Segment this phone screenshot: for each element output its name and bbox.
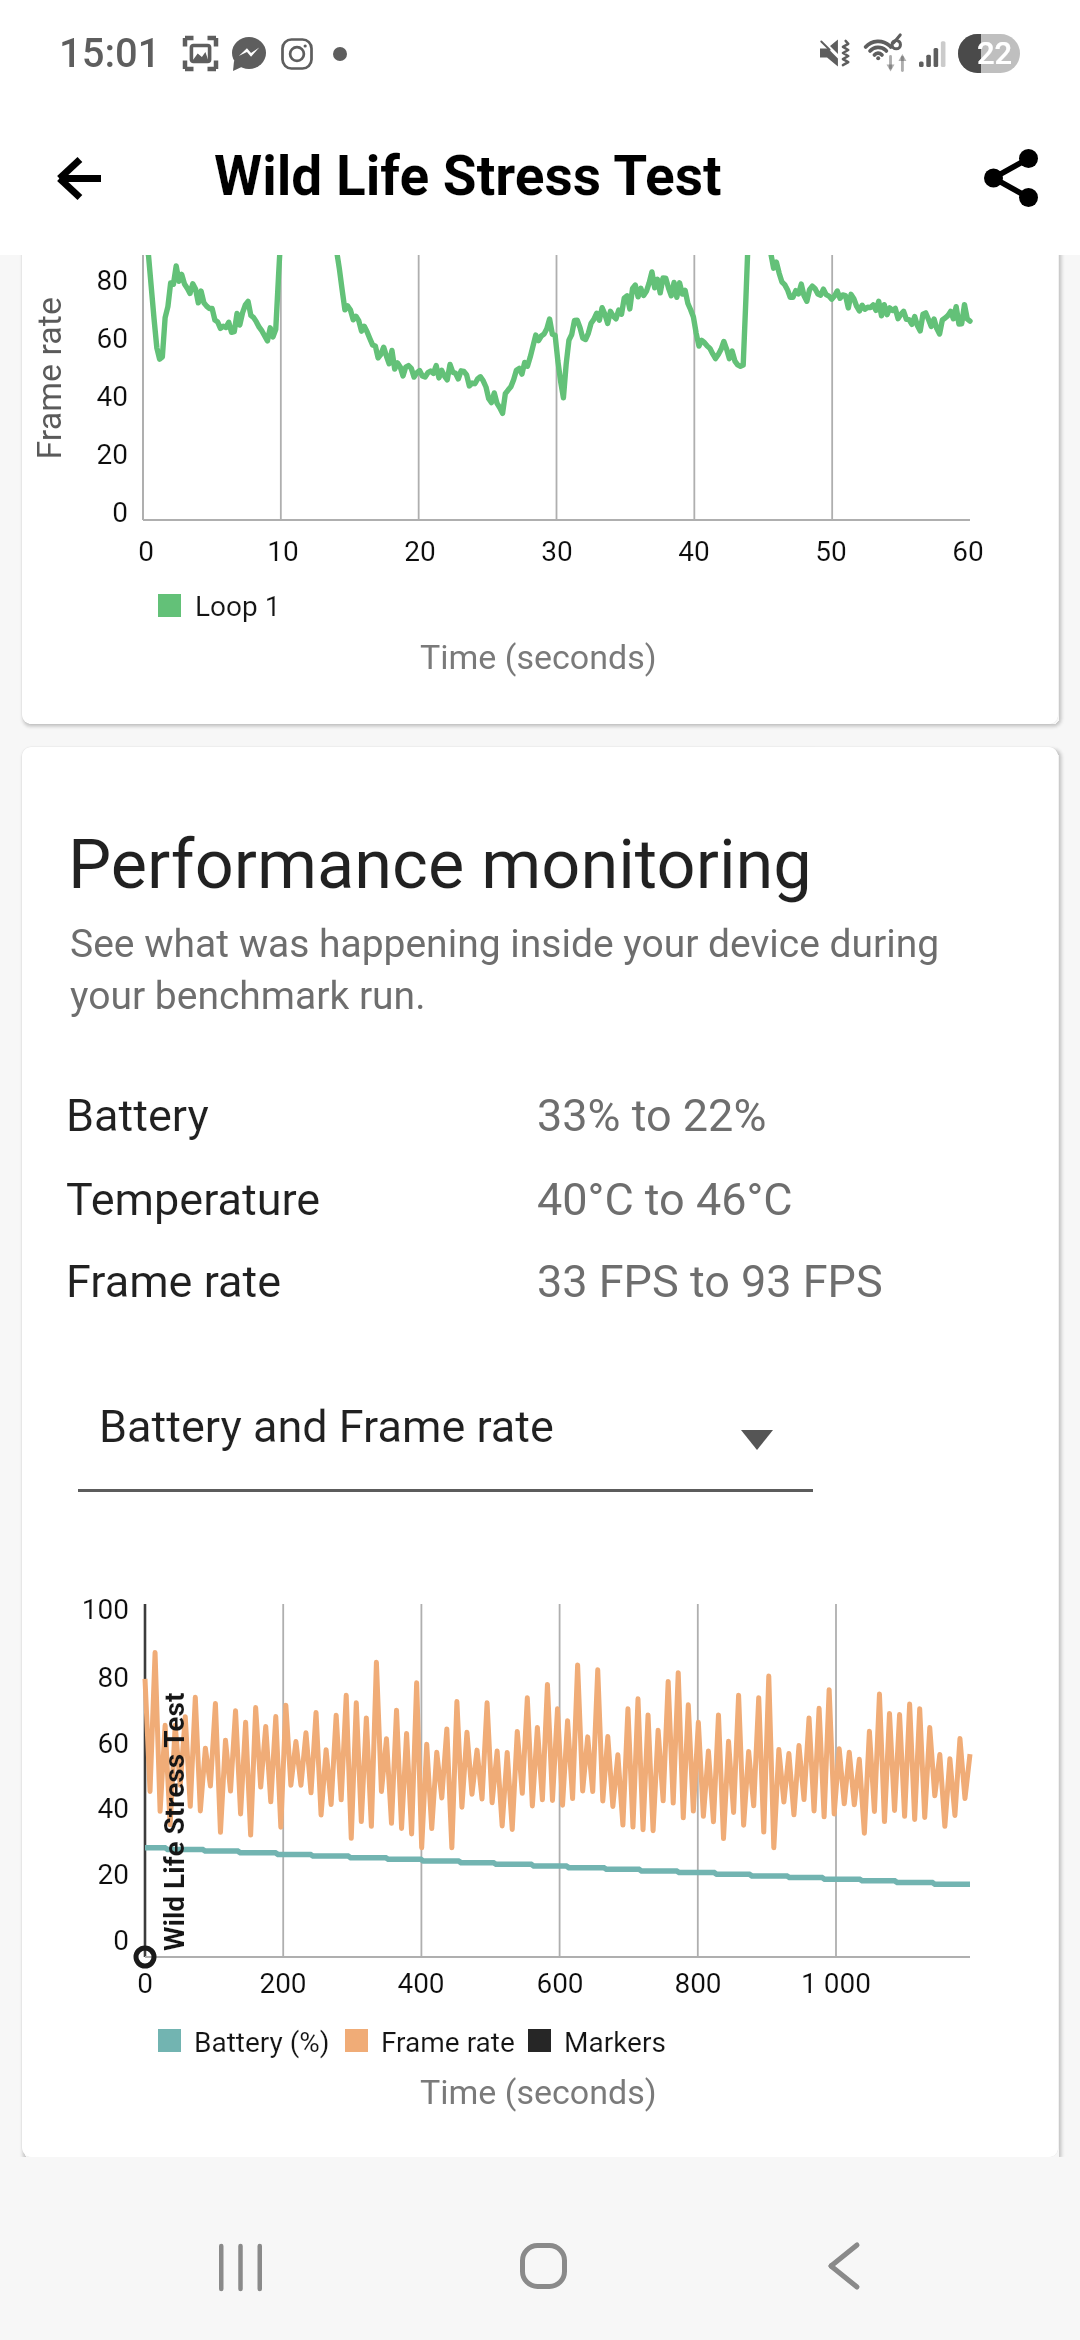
staticText: 40 [22, 380, 128, 413]
staticText: Loop 1 [195, 590, 281, 623]
staticText: 15:01 [59, 30, 161, 77]
staticText: 0 [22, 535, 296, 568]
staticText: 80 [22, 264, 128, 297]
staticText: 40 [544, 535, 844, 568]
button[interactable]: Home [478, 2201, 608, 2331]
staticText: 40 [22, 1792, 129, 1825]
staticText: 800 [548, 1967, 848, 2000]
staticText: Wild Life Stress Test [158, 1692, 191, 1951]
staticText: 20 [22, 438, 128, 471]
staticText: Frame rate [381, 2026, 515, 2059]
staticText: Battery [66, 1089, 209, 1142]
staticText: Time (seconds) [420, 2072, 657, 2112]
staticText: Battery and Frame rate [99, 1400, 554, 1453]
staticText: Frame rate [66, 1255, 282, 1308]
staticText: Performance monitoring [68, 824, 812, 904]
staticText: 60 [22, 322, 128, 355]
button[interactable]: Battery and Frame rate [78, 1390, 813, 1495]
staticText: 80 [22, 1661, 129, 1694]
staticText: 400 [271, 1967, 571, 2000]
staticText: 40°C to 46°C [537, 1173, 793, 1226]
staticText: 60 [818, 535, 1058, 568]
staticText: 20 [22, 1858, 129, 1891]
staticText: See what was happening inside your devic… [70, 921, 940, 1019]
staticText: 20 [270, 535, 570, 568]
staticText: 100 [22, 1593, 129, 1626]
button[interactable]: Temperature [22, 1159, 1058, 1241]
staticText: 0 [22, 1924, 129, 1957]
staticText: Temperature [66, 1173, 321, 1226]
staticText: 10 [133, 535, 433, 568]
staticText: 50 [681, 535, 981, 568]
button[interactable]: Frame rate [22, 1241, 1058, 1323]
staticText: 0 [22, 496, 128, 529]
button[interactable]: Back [779, 2201, 909, 2331]
staticText: 22 [977, 35, 1013, 71]
button[interactable]: Back [34, 133, 124, 223]
staticText: Wild Life Stress Test [214, 144, 722, 208]
button[interactable]: Battery [22, 1075, 1058, 1157]
staticText: 0 [22, 1967, 295, 2000]
staticText: 30 [407, 535, 707, 568]
staticText: Time (seconds) [420, 637, 657, 677]
button[interactable]: Share [966, 133, 1056, 223]
staticText: Frame rate [28, 296, 68, 459]
staticText: 200 [133, 1967, 433, 2000]
staticText: 33 FPS to 93 FPS [537, 1255, 883, 1308]
staticText: 1 000 [686, 1967, 986, 2000]
staticText: 33% to 22% [537, 1089, 767, 1142]
staticText: Markers [564, 2026, 666, 2059]
button[interactable]: Recent apps [175, 2202, 305, 2332]
staticText: 60 [22, 1727, 129, 1760]
staticText: Battery (%) [194, 2026, 330, 2059]
staticText: 600 [410, 1967, 710, 2000]
